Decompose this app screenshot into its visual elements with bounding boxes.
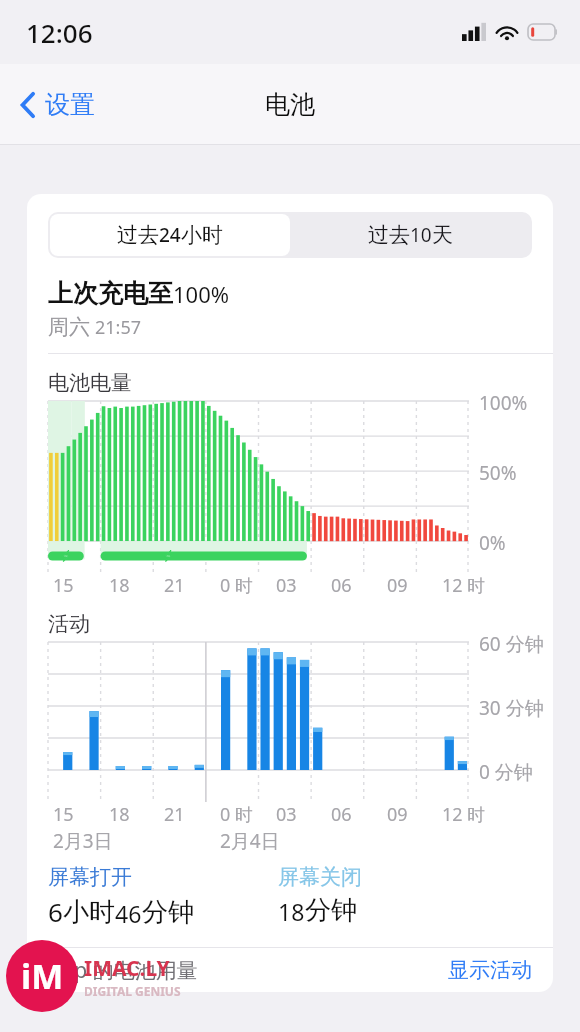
staticText: 0% <box>479 530 506 556</box>
staticText: 21 <box>164 802 185 827</box>
staticText: 18 <box>109 573 157 598</box>
staticText: 分钟 <box>142 896 194 929</box>
button[interactable]: 过去 <box>50 214 290 256</box>
staticText: DIGITAL GENIUS <box>84 983 181 999</box>
staticText: 天 <box>432 222 453 248</box>
staticText: 10 <box>410 222 432 248</box>
staticText: App 的电池用量 <box>48 956 198 985</box>
staticText: 50% <box>479 460 517 486</box>
staticText: 2月4日 <box>220 828 280 854</box>
staticText: 0 分钟 <box>479 759 533 785</box>
staticText: 活动 <box>48 611 90 637</box>
staticText: 06 <box>331 573 379 598</box>
staticText: 24 <box>159 222 181 248</box>
staticText: 周六 <box>48 314 90 340</box>
staticText: 电池电量 <box>48 370 132 396</box>
button[interactable]: 设置 <box>14 83 101 126</box>
staticText: 2月3日 <box>53 828 113 854</box>
staticText: 12 时 <box>442 802 486 827</box>
staticText: 18 <box>109 802 130 827</box>
staticText: 03 <box>276 802 297 827</box>
staticText: 09 <box>387 573 435 598</box>
staticText: 电池 <box>265 89 315 120</box>
staticText: 21 <box>164 573 212 598</box>
staticText: 03 <box>276 573 324 598</box>
staticText: 06 <box>331 802 352 827</box>
staticText: 设置 <box>45 89 95 120</box>
staticText: 21:57 <box>95 315 142 340</box>
staticText: 分钟 <box>305 894 357 927</box>
staticText: iM <box>21 953 64 999</box>
staticText: 12 时 <box>442 573 490 598</box>
staticText: 0 时 <box>220 573 268 598</box>
staticText: 屏幕打开 <box>48 864 132 890</box>
staticText: 上次充电至 <box>48 278 173 309</box>
staticText: 100% <box>479 390 528 416</box>
staticText: 过去 <box>117 222 159 248</box>
staticText: 30 分钟 <box>479 695 544 721</box>
staticText: 15 <box>53 802 74 827</box>
staticText: 屏幕关闭 <box>278 864 362 890</box>
staticText: 0 时 <box>220 802 253 827</box>
button[interactable]: 过去 <box>290 214 530 256</box>
staticText: 12:06 <box>26 15 93 50</box>
staticText: 显示活动 <box>448 957 532 983</box>
staticText: 15 <box>53 573 101 598</box>
staticText: 小时 <box>181 222 223 248</box>
staticText: 09 <box>387 802 408 827</box>
staticText: 46 <box>115 898 142 929</box>
staticText: 60 分钟 <box>479 631 544 657</box>
staticText: 6 <box>48 894 63 929</box>
staticText: 18 <box>278 896 305 927</box>
button[interactable]: 显示活动 <box>448 957 532 983</box>
staticText: 过去 <box>368 222 410 248</box>
staticText: 小时 <box>63 896 115 929</box>
staticText: 100% <box>173 279 230 309</box>
staticText: IMAC.LY <box>84 954 170 983</box>
